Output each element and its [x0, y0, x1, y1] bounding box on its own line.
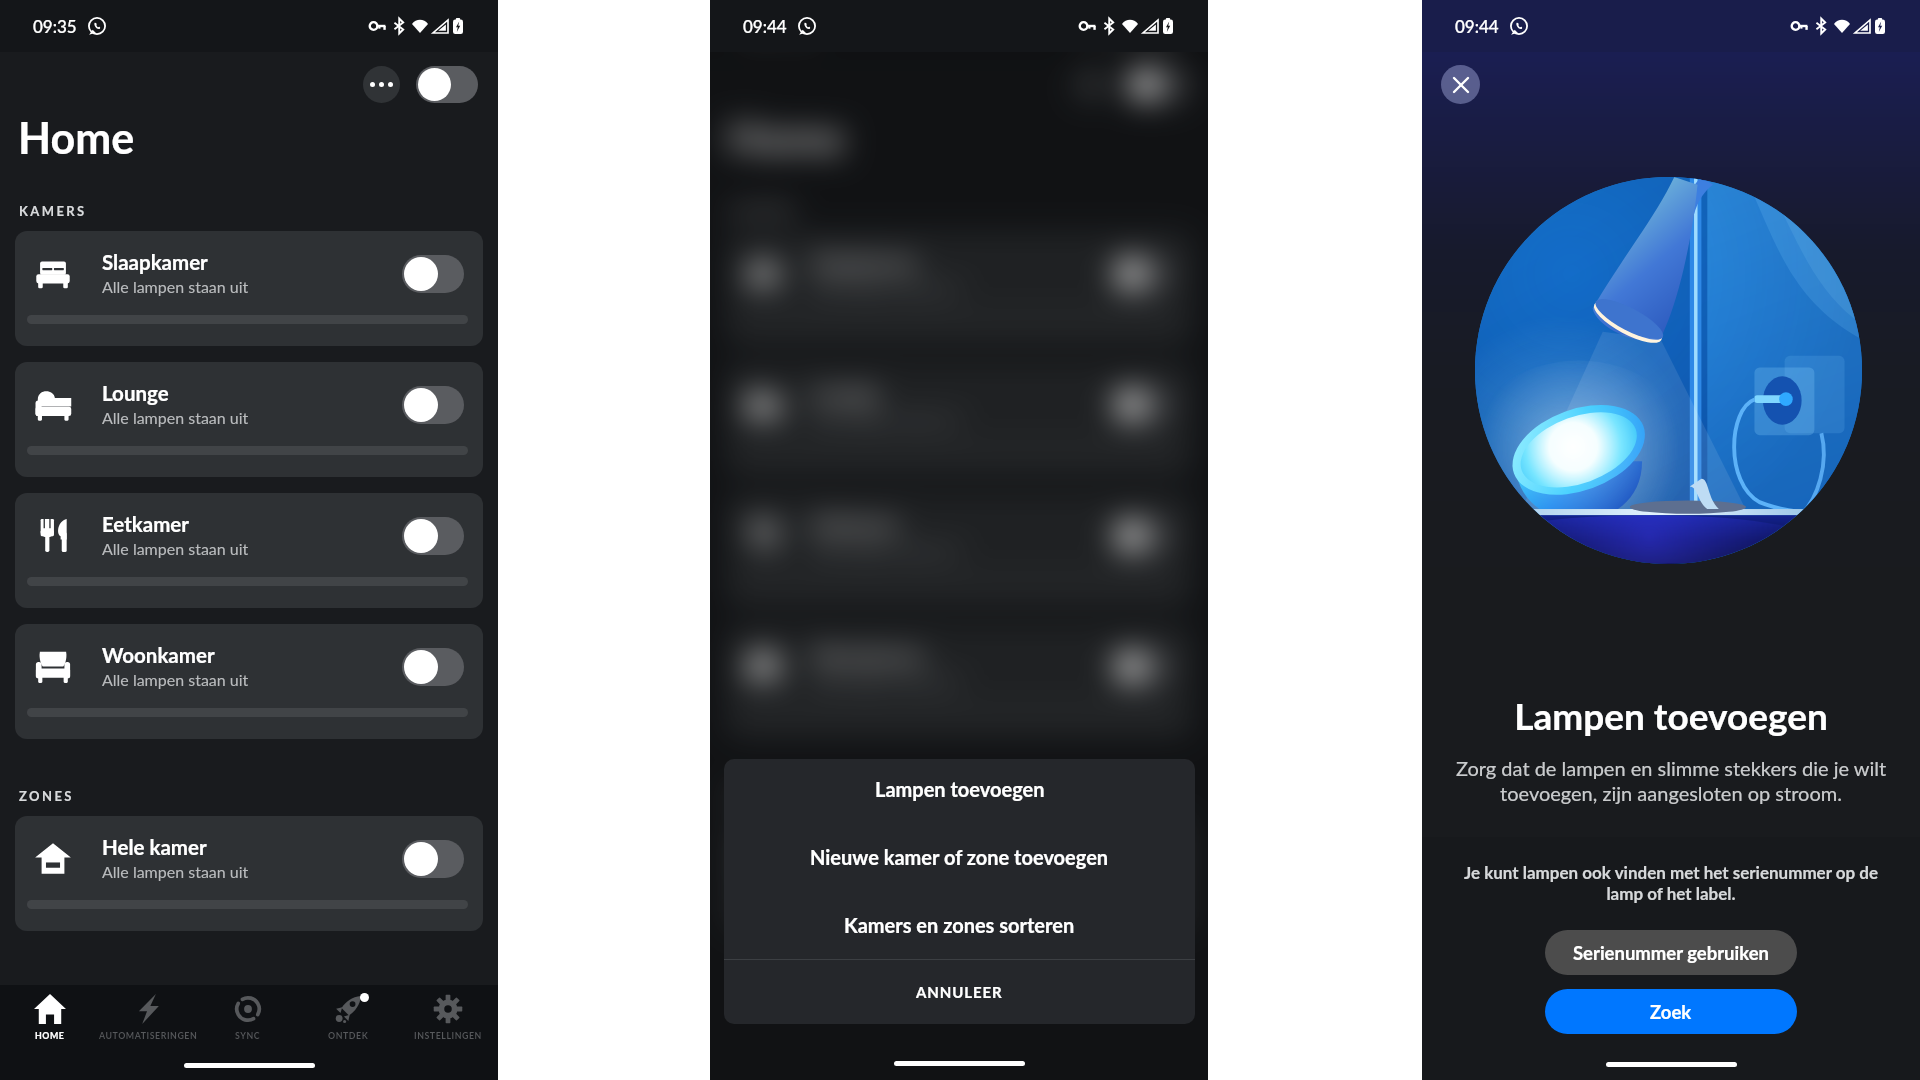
button[interactable]: INSTELLINGEN [398, 991, 498, 1041]
staticText: Serienummer gebruiken [1573, 942, 1769, 964]
button[interactable]: Eetkamer [15, 493, 483, 608]
staticText: Eetkamer [812, 512, 899, 537]
staticText: Lounge [102, 381, 169, 406]
staticText: 09:35 [743, 16, 787, 36]
staticText: ONTDEK [328, 1030, 369, 1041]
staticText: Hele kamer [812, 835, 917, 860]
button[interactable]: HOME [0, 991, 99, 1041]
button[interactable]: Slaapkamer toggle [1112, 255, 1174, 293]
staticText: Lampen toevoegen [875, 777, 1045, 801]
staticText: Zorg dat de lampen en slimme stekkers di… [1438, 756, 1904, 805]
button[interactable]: Lounge toggle [402, 386, 464, 424]
button[interactable]: Woonkamer toggle [402, 648, 464, 686]
staticText: Woonkamer [812, 643, 925, 668]
staticText: KAMERS [19, 203, 87, 219]
button[interactable]: Lounge [15, 362, 483, 477]
button[interactable]: Nieuwe kamer of zone toevoegen [724, 823, 1195, 891]
staticText: Je kunt lampen ook vinden met het serien… [1452, 862, 1890, 904]
staticText: Alle lampen staan uit [102, 277, 249, 296]
staticText: Lounge [812, 381, 879, 406]
staticText: Lampen toevoegen [1422, 693, 1920, 737]
button[interactable]: Eetkamer toggle [402, 517, 464, 555]
button[interactable]: Woonkamer [15, 624, 483, 739]
staticText: Zoek [1650, 1001, 1692, 1023]
staticText: Home [18, 112, 135, 164]
staticText: Hele kamer [102, 835, 207, 860]
button[interactable]: AUTOMATISERINGEN [99, 991, 198, 1041]
button[interactable]: Slaapkamer [15, 231, 483, 346]
button[interactable]: More options [363, 66, 400, 103]
staticText: HOME [35, 1030, 65, 1041]
staticText: Alle lampen staan uit [812, 539, 959, 558]
staticText: Alle lampen staan uit [102, 408, 249, 427]
staticText: Alle lampen staan uit [812, 408, 959, 427]
button[interactable]: Eetkamer toggle [1112, 517, 1174, 555]
button[interactable]: Woonkamer [725, 624, 1193, 739]
button[interactable]: Slaapkamer toggle [402, 255, 464, 293]
staticText: Woonkamer [102, 643, 215, 668]
button[interactable]: Lounge [725, 362, 1193, 477]
staticText: Alle lampen staan uit [812, 277, 959, 296]
button[interactable]: Woonkamer toggle [1112, 648, 1174, 686]
button[interactable]: Close [1441, 65, 1480, 104]
button[interactable]: Lampen toevoegen [724, 759, 1195, 819]
button[interactable]: Hele kamer toggle [402, 840, 464, 878]
staticText: Alle lampen staan uit [812, 862, 959, 881]
button[interactable]: ONTDEK [298, 991, 398, 1041]
staticText: Slaapkamer [102, 250, 208, 275]
staticText: 09:44 [1455, 16, 1499, 36]
staticText: ZONES [19, 788, 74, 804]
staticText: Kamers en zones sorteren [844, 913, 1075, 937]
staticText: SYNC [235, 1030, 261, 1041]
button[interactable]: All lights [1126, 66, 1188, 103]
button[interactable]: Kamers en zones sorteren [724, 891, 1195, 959]
staticText: Eetkamer [102, 512, 189, 537]
staticText: INSTELLINGEN [414, 1030, 482, 1041]
staticText: Slaapkamer [812, 250, 918, 275]
button[interactable]: ANNULEER [724, 960, 1195, 1024]
button[interactable]: Hele kamer [725, 816, 1193, 931]
staticText: 09:44 [743, 16, 787, 36]
button[interactable]: Hele kamer [15, 816, 483, 931]
staticText: Nieuwe kamer of zone toevoegen [810, 845, 1109, 869]
button[interactable]: Lounge toggle [1112, 386, 1174, 424]
button[interactable]: SYNC [198, 991, 298, 1041]
staticText: 09:35 [33, 16, 77, 36]
staticText: ANNULEER [916, 983, 1003, 1001]
button[interactable]: Slaapkamer [725, 231, 1193, 346]
button[interactable]: Zoek [1545, 989, 1797, 1034]
button[interactable]: Eetkamer [725, 493, 1193, 608]
staticText: AUTOMATISERINGEN [99, 1030, 198, 1041]
button[interactable]: All lights [416, 66, 478, 103]
staticText: Alle lampen staan uit [102, 670, 249, 689]
button[interactable]: Serienummer gebruiken [1545, 930, 1797, 975]
staticText: Alle lampen staan uit [102, 862, 249, 881]
staticText: Alle lampen staan uit [812, 670, 959, 689]
staticText: Home [728, 112, 845, 164]
staticText: Alle lampen staan uit [102, 539, 249, 558]
